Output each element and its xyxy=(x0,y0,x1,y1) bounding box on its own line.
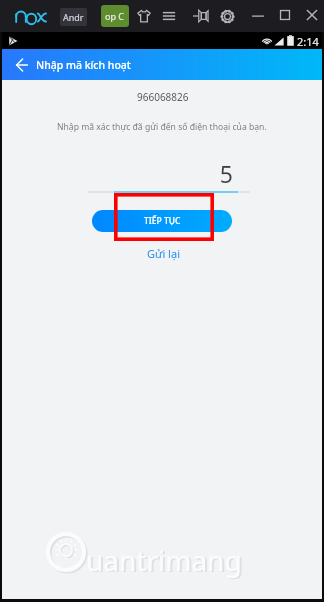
button[interactable]: TIẾP TỤC xyxy=(92,210,232,232)
staticText: uantrimang xyxy=(88,542,244,580)
button[interactable]: Back xyxy=(8,51,36,79)
staticText: 2:14 xyxy=(297,34,319,49)
staticText: 5 xyxy=(87,158,233,189)
staticText: Nhập mã kích hoạt xyxy=(36,58,131,72)
button[interactable]: Settings xyxy=(214,3,240,29)
staticText: uantrimang xyxy=(86,541,242,579)
staticText: TIẾP TỤC xyxy=(144,215,181,227)
staticText: op C xyxy=(105,10,125,22)
button[interactable]: Minimize xyxy=(245,2,271,28)
staticText: Gửi lại xyxy=(147,246,180,261)
button[interactable]: Andr xyxy=(60,8,87,26)
button[interactable]: Theme xyxy=(131,3,157,29)
button[interactable]: Close xyxy=(299,2,324,28)
button[interactable]: Maximize xyxy=(272,2,298,28)
button[interactable]: Menu xyxy=(156,3,182,29)
button[interactable]: Gửi lại xyxy=(139,243,188,264)
staticText: Nhập mã xác thực đã gửi đến số điện thoạ… xyxy=(57,121,267,133)
button[interactable]: Pin window xyxy=(188,3,214,29)
button[interactable]: op C xyxy=(101,5,129,27)
staticText: 966068826 xyxy=(137,90,189,104)
staticText: Andr xyxy=(63,11,84,23)
